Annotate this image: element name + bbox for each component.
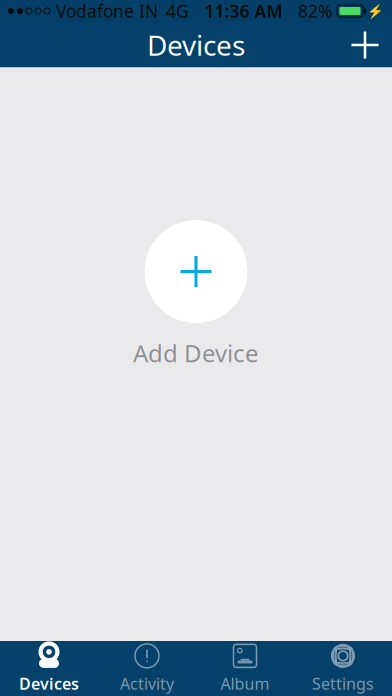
staticText: Album — [220, 673, 269, 694]
button[interactable]: Album — [196, 641, 294, 696]
staticText: 11:36 AM — [204, 0, 282, 22]
staticText: Activity — [120, 673, 174, 694]
staticText: Devices — [147, 26, 245, 64]
button[interactable]: Add — [338, 22, 392, 68]
staticText: 4G — [166, 0, 189, 22]
staticText: Add Device — [133, 337, 259, 369]
staticText: 82% — [298, 0, 332, 22]
button[interactable]: Devices — [0, 641, 98, 696]
staticText: Settings — [312, 673, 374, 694]
staticText: Vodafone IN — [56, 0, 158, 22]
button[interactable]: Settings — [294, 641, 392, 696]
button[interactable]: Add Device — [133, 220, 259, 369]
button[interactable]: Activity — [98, 641, 196, 696]
staticText: ⚡ — [367, 3, 384, 19]
staticText: Devices — [19, 673, 79, 694]
